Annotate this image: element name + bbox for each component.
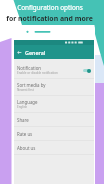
staticText: Language: [17, 99, 38, 105]
staticText: About us: [17, 145, 36, 151]
staticText: English: [17, 105, 28, 109]
button[interactable]: Sort media by: [14, 79, 94, 95]
staticText: Notification: [17, 65, 42, 71]
staticText: for notification and more: [6, 14, 93, 23]
staticText: Share: [17, 117, 29, 123]
button[interactable]: Language: [14, 96, 94, 112]
staticText: Newest first: [17, 88, 34, 92]
staticText: Configuration options: [17, 3, 83, 12]
staticText: General: [25, 49, 46, 56]
button[interactable]: Notification: [14, 62, 94, 78]
button[interactable]: About us: [14, 141, 94, 154]
button[interactable]: Back: [14, 45, 25, 59]
staticText: Rate us: [17, 131, 33, 137]
button[interactable]: Share: [14, 113, 94, 126]
staticText: Enable or disable notification: [17, 71, 58, 75]
button[interactable]: Rate us: [14, 127, 94, 140]
staticText: Sort media by: [17, 82, 46, 88]
